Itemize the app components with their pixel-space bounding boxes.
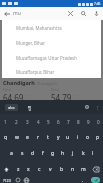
staticText: x (27, 166, 30, 173)
staticText: 8 (77, 119, 80, 125)
button[interactable]: Emoji (13, 177, 22, 183)
staticText: 9 (87, 119, 90, 125)
staticText: 7:46 (94, 2, 101, 6)
button[interactable]: 3 (22, 114, 33, 129)
button[interactable]: p (93, 129, 103, 145)
button[interactable]: Clear (64, 7, 77, 20)
staticText: o (86, 134, 90, 141)
button[interactable]: 9 (83, 114, 93, 129)
staticText: 7 (67, 119, 70, 125)
button[interactable]: c (34, 161, 45, 177)
button[interactable]: Munger, Bihar (2, 35, 101, 50)
button[interactable]: 5 (43, 114, 53, 129)
button[interactable]: Settings (82, 102, 92, 112)
button[interactable]: h (58, 145, 68, 161)
staticText: b (60, 166, 64, 173)
staticText: f (42, 150, 44, 157)
staticText: s (21, 150, 24, 157)
button[interactable]: ?123 (0, 177, 13, 183)
staticText: h (61, 150, 65, 157)
button[interactable]: मु (26, 104, 33, 110)
staticText: mu (13, 10, 21, 17)
button[interactable]: o (83, 129, 93, 145)
button[interactable]: Mumbai, Maharashtra (2, 20, 101, 35)
button[interactable]: 6 (53, 114, 63, 129)
button[interactable]: t (43, 129, 53, 145)
staticText: 3 (26, 119, 29, 125)
staticText: a (10, 150, 13, 157)
button[interactable]: y (53, 129, 63, 145)
button[interactable]: x (23, 161, 34, 177)
staticText: ⋮ (95, 105, 99, 110)
button[interactable]: Backspace (89, 161, 103, 177)
button[interactable]: 8 (73, 114, 83, 129)
staticText: r (37, 134, 40, 141)
button[interactable]: 7 (63, 114, 73, 129)
button[interactable]: k (78, 145, 88, 161)
button[interactable]: Voice search (90, 7, 103, 20)
staticText: d (31, 150, 35, 157)
button[interactable]: 4 (33, 114, 43, 129)
button[interactable]: s (17, 145, 28, 161)
button[interactable]: b (56, 161, 67, 177)
staticText: u (66, 134, 70, 141)
button[interactable]: 1 (0, 114, 11, 129)
staticText: Diesel (51, 88, 59, 92)
staticText: z (17, 166, 20, 173)
button[interactable]: g (48, 145, 58, 161)
button[interactable]: 0 (93, 114, 103, 129)
staticText: Munger, Bihar (16, 40, 45, 46)
staticText: Mumbai, Maharashtra (16, 25, 62, 31)
staticText: e (26, 134, 29, 141)
staticText: q (4, 134, 8, 141)
staticText: 2 (15, 119, 18, 125)
button[interactable]: Shift (0, 161, 13, 177)
staticText: n (71, 166, 75, 173)
button[interactable]: 2 (11, 114, 22, 129)
button[interactable]: More (92, 103, 101, 112)
button[interactable]: w (11, 129, 22, 145)
button[interactable]: v (45, 161, 56, 177)
button[interactable]: n (67, 161, 78, 177)
staticText: v (49, 166, 52, 173)
button[interactable]: d (28, 145, 38, 161)
button[interactable]: Muzaffarpur, Bihar (2, 65, 101, 78)
staticText: मु (28, 104, 31, 110)
staticText: 6 (57, 119, 60, 125)
button[interactable]: z (13, 161, 23, 177)
staticText: i (77, 134, 79, 141)
staticText: y (57, 134, 60, 141)
button[interactable]: Back (0, 7, 13, 20)
button[interactable]: e (22, 129, 33, 145)
button[interactable]: abc (5, 104, 18, 111)
staticText: m (81, 166, 86, 173)
button[interactable]: l (88, 145, 98, 161)
staticText: k (82, 150, 85, 157)
button[interactable]: j (68, 145, 78, 161)
staticText: Petrol (3, 88, 11, 92)
button[interactable]: . (78, 177, 87, 183)
staticText: Muzaffarnagar, Uttar Pradesh (16, 55, 77, 61)
button[interactable]: r (33, 129, 43, 145)
button[interactable]: Change language (22, 177, 31, 183)
button[interactable]: m (78, 161, 89, 177)
staticText: 4 (37, 119, 40, 125)
staticText: Chandigarh (3, 79, 35, 86)
staticText: 64.69 (3, 92, 24, 100)
button[interactable]: u (63, 129, 73, 145)
staticText: ?123 (3, 178, 11, 183)
button[interactable]: Muzaffarnagar, Uttar Pradesh (2, 50, 101, 65)
staticText: abc (8, 105, 15, 110)
button[interactable]: Enter (87, 177, 103, 183)
button[interactable]: i (73, 129, 83, 145)
button[interactable]: f (38, 145, 48, 161)
button[interactable]: q (0, 129, 11, 145)
staticText: Chandigarh (37, 81, 57, 86)
staticText: c (38, 166, 41, 173)
button[interactable]: Search (77, 7, 90, 20)
staticText: 54.79 (51, 92, 72, 100)
staticText: 1 (4, 119, 7, 125)
button[interactable]: a (6, 145, 17, 161)
